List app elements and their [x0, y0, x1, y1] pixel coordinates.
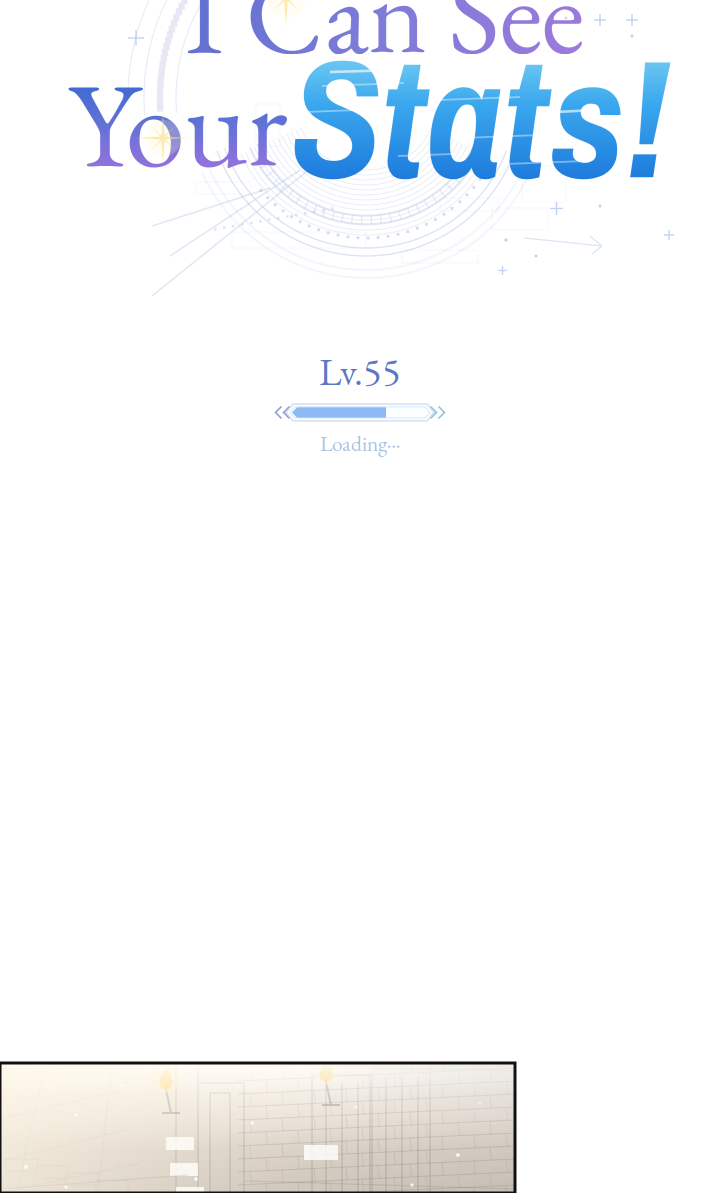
- staticText: Lv.55: [319, 346, 401, 396]
- staticText: Loading⋯: [320, 429, 400, 457]
